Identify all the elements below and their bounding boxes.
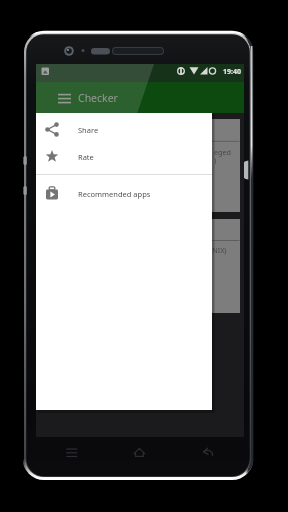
staticText: 19:40 [223, 67, 241, 77]
staticText: Recommended apps [78, 189, 151, 199]
button[interactable]: Share [36, 116, 212, 143]
button[interactable] [60, 441, 83, 463]
staticText: eged [214, 147, 231, 157]
button[interactable] [47, 82, 81, 113]
button[interactable]: Recommended apps [36, 180, 212, 207]
staticText: ) [214, 155, 217, 165]
button[interactable] [127, 442, 152, 463]
button[interactable] [196, 442, 220, 463]
staticText: UNIX) [207, 245, 227, 255]
staticText: Share [78, 125, 99, 135]
staticText: Rate [78, 152, 94, 162]
staticText: Checker [78, 91, 118, 105]
button[interactable]: Rate [36, 143, 212, 170]
